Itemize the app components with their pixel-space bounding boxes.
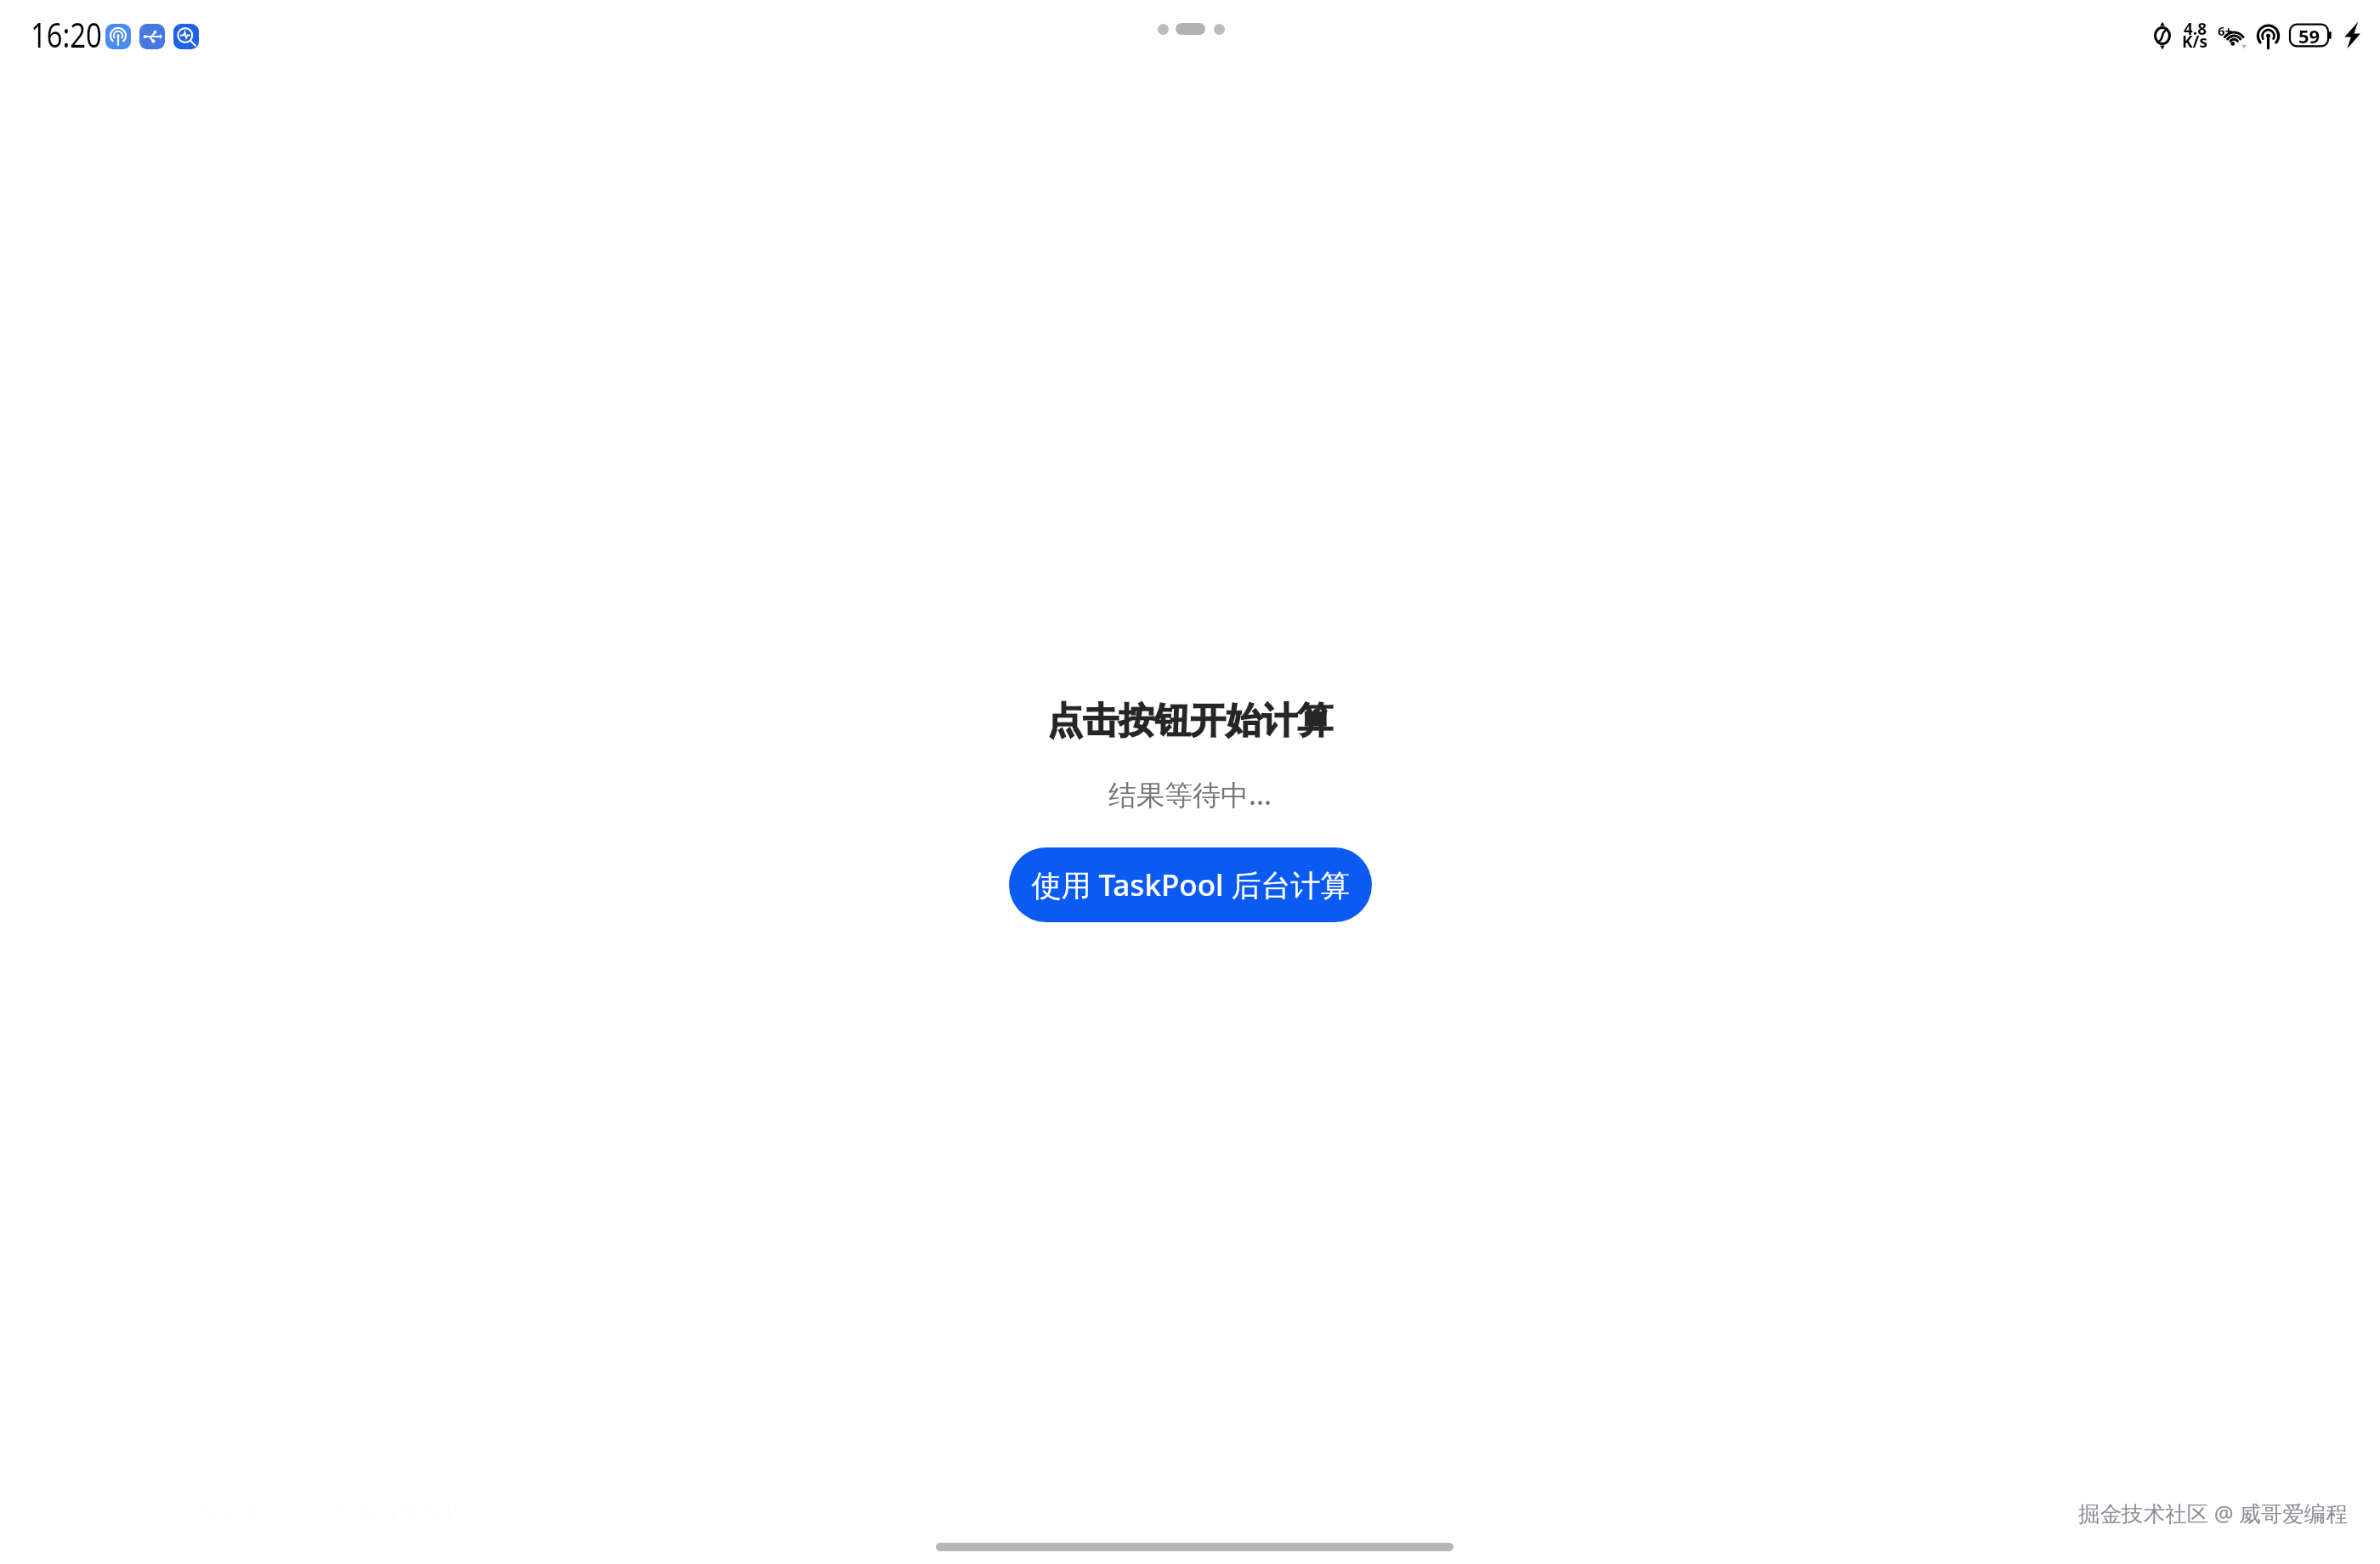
staticText: 使用 TaskPool 后台计算 [1031,864,1351,905]
staticText: 4.8 [2184,18,2207,40]
button[interactable]: Broadcast [105,24,131,49]
staticText: 掘金技术社区 @ 威哥爱编程 [2078,1499,2348,1528]
staticText: 6+ [2218,22,2233,39]
button[interactable]: 使用 TaskPool 后台计算 [1009,847,1372,922]
staticText: K/s [2182,31,2208,53]
staticText: 59 [2298,23,2320,48]
staticText: 16:20 [31,11,102,57]
staticText: 结果等待中... [1108,775,1272,813]
staticText: 点击按钮开始计算 [1047,699,1333,744]
button[interactable]: USB connected [139,24,165,49]
button[interactable]: Performance monitor [173,24,199,49]
